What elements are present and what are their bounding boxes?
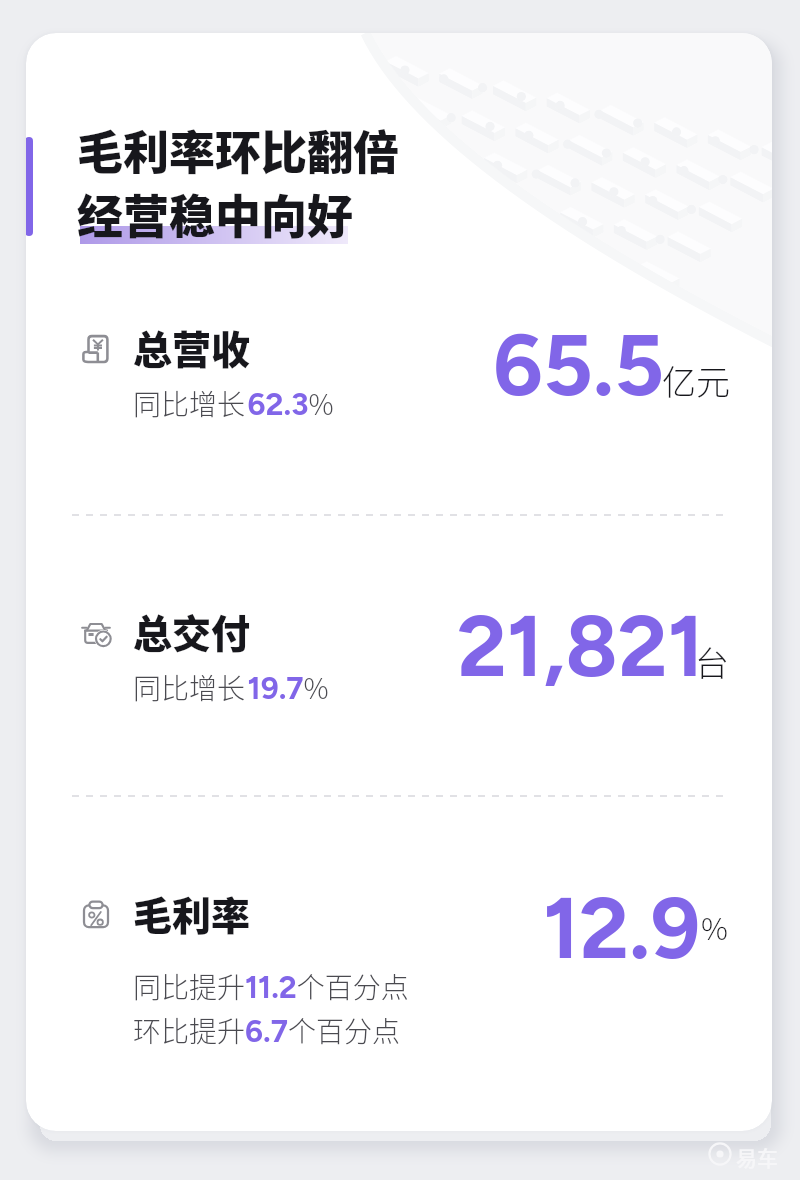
staticText: 21,821 — [457, 594, 704, 697]
staticText: 毛利率环比翻倍 — [77, 116, 399, 183]
other: Total deliveries — [81, 618, 111, 648]
other: Gross margin — [81, 900, 111, 930]
staticText: 同比增长 19.7% — [133, 667, 329, 708]
staticText: 总交付 — [133, 603, 251, 659]
staticText: 同比提升11.2个百分点 — [133, 966, 409, 1007]
staticText: 毛利率 — [133, 885, 251, 941]
staticText: 经营稳中向好 — [77, 180, 353, 247]
staticText: 环比提升6.7个百分点 — [133, 1010, 400, 1051]
staticText: 同比增长 62.3% — [133, 383, 334, 424]
staticText: 12.9 — [543, 876, 701, 979]
staticText: 台 — [695, 637, 729, 686]
staticText: 65.5 — [493, 313, 665, 416]
staticText: 总营收 — [133, 319, 251, 375]
staticText: 亿元 — [662, 356, 730, 405]
staticText: % — [701, 905, 728, 948]
staticText: 易车 — [736, 1142, 778, 1172]
other: Total revenue — [81, 334, 111, 364]
